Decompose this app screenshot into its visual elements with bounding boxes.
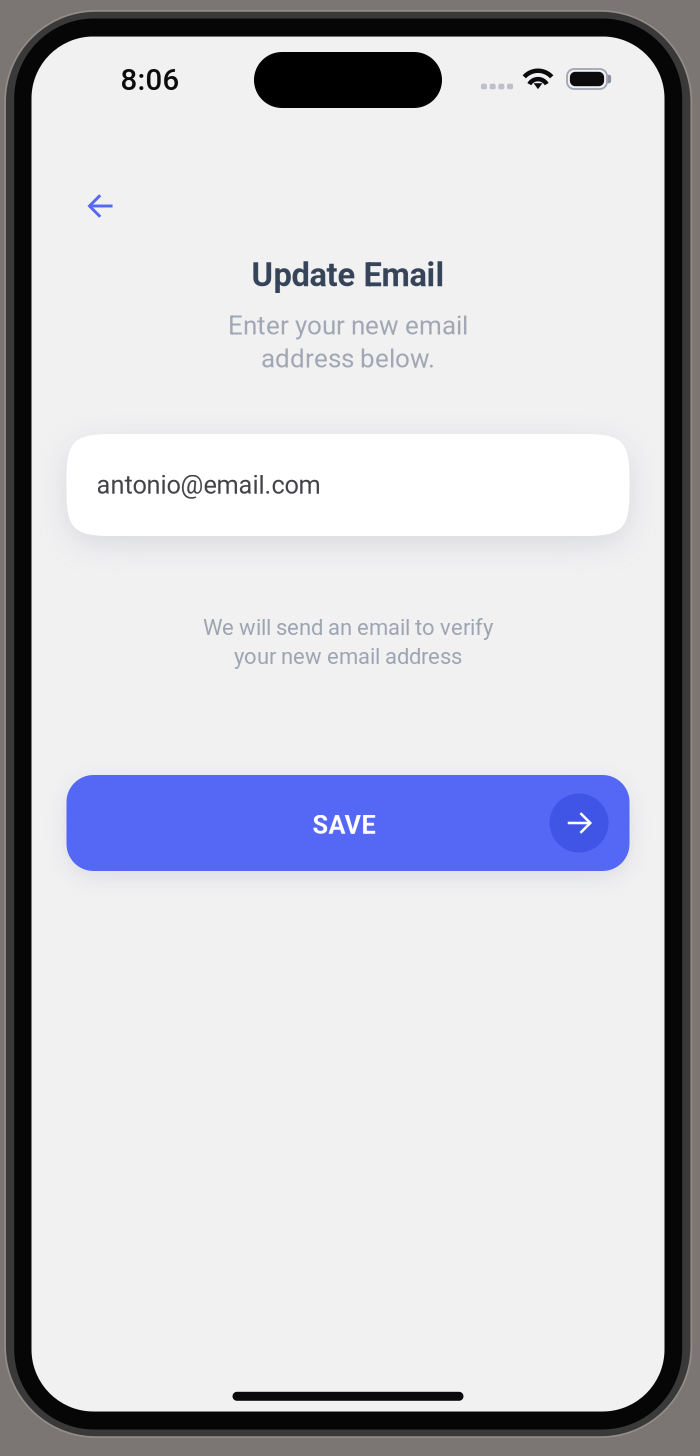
staticText: your new email address [234,644,462,669]
button[interactable]: Back [69,174,133,238]
staticText: 8:06 [120,63,179,97]
staticText: We will send an email to verify [203,615,493,640]
staticText: antonio@email.com [96,470,320,500]
staticText: Update Email [251,256,444,294]
staticText: address below. [261,343,435,374]
button[interactable]: SAVE [66,775,629,871]
staticText: Enter your new email [228,310,468,341]
staticText: SAVE [312,810,375,840]
